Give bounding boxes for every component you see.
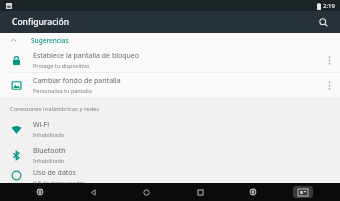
staticText: Personaliza tu pantalla	[33, 87, 92, 94]
staticText: Sugerencias	[31, 36, 69, 45]
button[interactable]: Girar	[240, 183, 266, 201]
staticText: Conexiones inalámbricas y redes	[10, 105, 100, 113]
button[interactable]: Bluetooth	[0, 142, 340, 168]
staticText: Configuración	[12, 16, 70, 28]
staticText: Inhabilitado	[33, 131, 65, 138]
button[interactable]: Inicio	[133, 183, 159, 201]
button[interactable]: Wi-Fi	[0, 116, 340, 142]
button[interactable]: Uso de datos	[0, 168, 340, 183]
button[interactable]: Más opciones	[318, 73, 340, 97]
staticText: 2:19	[323, 2, 335, 10]
button[interactable]: Atrás	[80, 183, 106, 201]
staticText: Bluetooth	[33, 146, 66, 156]
staticText: Uso de datos	[33, 168, 76, 178]
button[interactable]: Establece la pantalla de bloqueo	[0, 48, 340, 72]
staticText: Establece la pantalla de bloqueo	[33, 51, 140, 61]
button[interactable]: Sugerencias	[0, 33, 340, 48]
button[interactable]: Más opciones	[318, 48, 340, 72]
staticText: Wi-Fi	[33, 120, 50, 130]
staticText: Protege tu dispositivo	[33, 62, 90, 69]
staticText: Cambiar fondo de pantalla	[33, 76, 121, 86]
button[interactable]: Recientes	[187, 183, 213, 201]
button[interactable]: Captura de pantalla	[293, 186, 313, 198]
button[interactable]: Cambiar fondo de pantalla	[0, 73, 340, 97]
staticText: 0 B de datos usados	[33, 179, 85, 183]
button[interactable]: Girar pantalla	[27, 183, 53, 201]
staticText: Inhabilitado	[33, 157, 65, 164]
button[interactable]: Buscar	[314, 13, 332, 31]
